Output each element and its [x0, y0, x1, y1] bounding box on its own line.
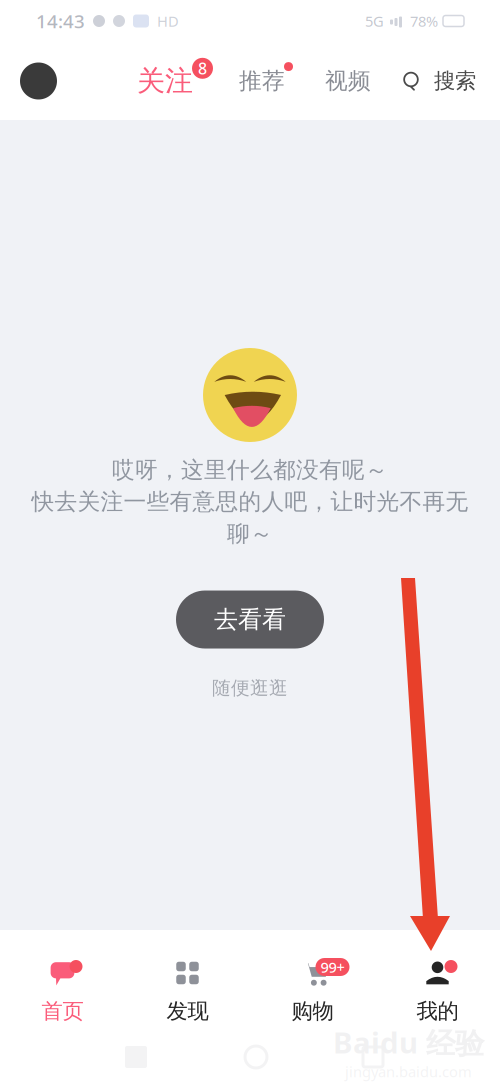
staticText: 哎呀，这里什么都没有呢～ — [112, 456, 388, 484]
staticText: jingyan.baidu.com — [345, 1062, 472, 1081]
button[interactable]: 我的 — [375, 930, 500, 1083]
button[interactable]: 99+ — [250, 930, 375, 1083]
staticText: 快去关注一些有意思的人吧，让时光不再无 — [31, 488, 468, 516]
button[interactable]: 去看看 — [176, 590, 324, 648]
staticText: 聊～ — [227, 520, 273, 547]
staticText: 视频 — [325, 67, 371, 95]
staticText: 我的 — [416, 998, 458, 1024]
staticText: 8 — [198, 58, 207, 79]
button[interactable]: 关注 — [133, 57, 197, 105]
staticText: 78% — [410, 11, 438, 31]
staticText: 推荐 — [239, 67, 285, 95]
staticText: 关注 — [137, 64, 193, 98]
button[interactable]: 首页 — [0, 930, 125, 1083]
staticText: 发现 — [166, 998, 208, 1024]
button[interactable]: 搜索 — [403, 68, 476, 94]
staticText: 99+ — [320, 957, 344, 977]
staticText: HD — [157, 11, 179, 31]
staticText: 首页 — [41, 998, 83, 1024]
button[interactable]: 推荐 — [235, 60, 289, 102]
staticText: Baidu 经验 — [333, 1023, 484, 1062]
button[interactable]: 发现 — [125, 930, 250, 1083]
staticText: 14:43 — [36, 9, 85, 33]
staticText: 5G — [365, 11, 384, 31]
staticText: 购物 — [291, 998, 333, 1024]
staticText: 搜索 — [434, 68, 476, 94]
button[interactable]: 视频 — [321, 60, 375, 102]
staticText: 去看看 — [214, 605, 286, 634]
button[interactable]: Profile — [20, 62, 57, 99]
button[interactable]: 随便逛逛 — [212, 676, 288, 699]
staticText: 随便逛逛 — [212, 676, 288, 699]
